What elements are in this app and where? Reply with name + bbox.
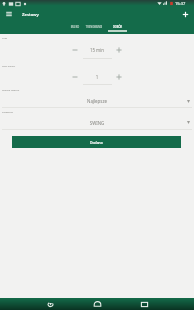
button[interactable]: MLEKO	[65, 21, 85, 34]
button[interactable]: Decrease	[70, 72, 80, 82]
staticText: TRENOWANIE	[84, 25, 104, 28]
staticText: Najlepsze	[0, 98, 194, 104]
button[interactable]: Add	[180, 9, 191, 20]
staticText: Czas	[2, 36, 8, 39]
staticText: Zestawy	[22, 11, 39, 17]
button[interactable]: Back	[41, 298, 59, 310]
button[interactable]	[0, 92, 194, 108]
staticText: Kategoria	[2, 110, 13, 113]
button[interactable]: Increase	[114, 45, 124, 55]
button[interactable]: Open navigation drawer	[4, 9, 14, 19]
button[interactable]: DOBÓR	[108, 21, 127, 34]
button[interactable]: TRENOWANIE	[84, 21, 104, 34]
button[interactable]	[0, 114, 194, 130]
staticText: Sposób doboru	[2, 88, 20, 91]
button[interactable]: Dodano	[12, 136, 181, 148]
button[interactable]: Decrease	[70, 45, 80, 55]
staticText: SWING	[0, 120, 194, 126]
button[interactable]: Home	[88, 298, 106, 310]
staticText: MLEKO	[65, 25, 85, 28]
staticText: DOBÓR	[108, 25, 127, 28]
button[interactable]: Recent apps	[135, 298, 153, 310]
staticText: 15 min	[82, 47, 112, 53]
staticText: Ilość nakłuć	[2, 64, 16, 67]
staticText: 15:37	[175, 1, 186, 6]
staticText: Dodano	[90, 140, 103, 145]
staticText: 1	[82, 74, 112, 80]
button[interactable]: Increase	[114, 72, 124, 82]
